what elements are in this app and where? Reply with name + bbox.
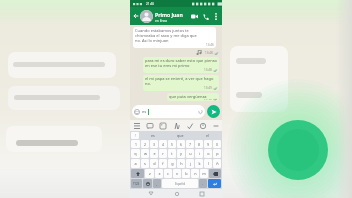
button[interactable]: Symbols <box>131 179 142 188</box>
button[interactable]: 4 <box>159 140 167 148</box>
button[interactable]: Back <box>146 189 155 198</box>
button[interactable]: Images <box>158 121 167 130</box>
staticText: 13:48 <box>204 68 212 72</box>
button[interactable]: 3 <box>150 140 158 148</box>
button[interactable]: s <box>141 159 149 168</box>
button[interactable]: k <box>195 159 203 168</box>
button[interactable]: 2 <box>141 140 149 148</box>
staticText: el <box>206 133 209 138</box>
button[interactable]: p <box>213 149 221 158</box>
button[interactable]: b <box>182 169 190 178</box>
button[interactable]: a <box>131 159 140 168</box>
button[interactable]: Enter <box>208 179 221 188</box>
button[interactable]: r <box>159 149 167 158</box>
button[interactable]: 8 <box>195 140 203 148</box>
staticText: j <box>190 161 191 166</box>
button[interactable] <box>140 10 153 23</box>
button[interactable]: Recents <box>197 189 206 198</box>
staticText: v <box>176 171 178 176</box>
button[interactable]: 1 <box>131 140 140 148</box>
button[interactable]: ñ <box>213 159 221 168</box>
button[interactable]: Backspace <box>209 169 221 178</box>
button[interactable]: para mi es duro saber esto que pienso en… <box>143 57 219 73</box>
button[interactable]: y <box>177 149 185 158</box>
button[interactable]: Stickers <box>145 121 154 130</box>
staticText: l <box>208 161 209 166</box>
staticText: 6 <box>180 142 182 147</box>
button[interactable]: 0 <box>213 140 221 148</box>
button[interactable]: h <box>177 159 185 168</box>
button[interactable]: z <box>145 169 154 178</box>
button[interactable]: Emoji <box>143 179 152 188</box>
staticText: 13:48 <box>205 51 213 55</box>
button[interactable]: w <box>141 149 149 158</box>
button[interactable]: c <box>164 169 172 178</box>
staticText: i <box>199 151 200 156</box>
staticText: que puta vergüenza <box>169 94 207 99</box>
staticText: b <box>185 171 188 176</box>
button[interactable]: 5 <box>168 140 176 148</box>
staticText: m <box>202 171 206 176</box>
staticText: 4 <box>162 142 164 147</box>
button[interactable]: el mi papa se enteró, a ver que hago no. <box>143 75 219 91</box>
button[interactable]: o <box>204 149 212 158</box>
button[interactable]: More options <box>211 12 220 21</box>
button[interactable]: Home <box>172 189 181 198</box>
button[interactable]: Video call <box>189 11 200 22</box>
staticText: x <box>158 171 161 176</box>
button[interactable]: Effects <box>185 121 194 130</box>
button[interactable]: 6 <box>177 140 185 148</box>
staticText: 13:46 <box>206 43 214 47</box>
button[interactable]: 7 <box>186 140 194 148</box>
button[interactable]: Shift <box>131 169 144 178</box>
button[interactable]: Space <box>162 179 198 188</box>
staticText: r <box>162 151 164 156</box>
staticText: n <box>194 171 197 176</box>
staticText: e <box>153 151 156 156</box>
button[interactable]: Cuando estabamos juntos te chismeaba el … <box>133 27 216 48</box>
staticText: a <box>134 161 137 166</box>
button[interactable]: Keyboard <box>132 121 141 130</box>
staticText: t <box>171 151 173 156</box>
button[interactable]: j <box>186 159 194 168</box>
button[interactable]: ! <box>131 132 139 139</box>
button[interactable]: g <box>168 159 176 168</box>
button[interactable]: 9 <box>204 140 212 148</box>
staticText: ?123 <box>133 182 140 186</box>
button[interactable]: q <box>131 149 140 158</box>
button[interactable]: que <box>167 132 194 139</box>
button[interactable]: 13:48 <box>195 50 219 55</box>
button[interactable]: x <box>155 169 163 178</box>
button[interactable]: t <box>168 149 176 158</box>
button[interactable]: n <box>191 169 199 178</box>
button[interactable]: u <box>186 149 194 158</box>
button[interactable]: v <box>173 169 181 178</box>
button[interactable]: Send <box>207 105 220 118</box>
button[interactable]: e <box>150 149 158 158</box>
staticText: ñ <box>216 161 219 166</box>
button[interactable]: m <box>200 169 208 178</box>
button[interactable]: Recent <box>198 121 207 130</box>
button[interactable]: el <box>194 132 221 139</box>
button[interactable]: f <box>159 159 167 168</box>
staticText: 3 <box>153 142 155 147</box>
button[interactable]: Voice call <box>200 11 211 22</box>
button[interactable]: que puta vergüenza <box>167 93 219 101</box>
button[interactable]: More <box>211 121 220 130</box>
staticText: 5 <box>171 142 173 147</box>
button[interactable]: es <box>132 105 205 118</box>
staticText: es <box>151 133 155 138</box>
button[interactable]: Back <box>132 12 140 20</box>
button[interactable]: l <box>204 159 212 168</box>
button[interactable]: i <box>195 149 203 158</box>
button[interactable]: es <box>139 132 167 139</box>
button[interactable]: Text <box>172 121 181 130</box>
button[interactable]: Primo Juan <box>155 11 189 22</box>
button[interactable]: Comma <box>153 179 161 188</box>
staticText: u <box>189 151 192 156</box>
staticText: 13:49 <box>204 86 212 90</box>
button[interactable]: d <box>150 159 158 168</box>
staticText: . <box>202 181 204 186</box>
staticText: 9 <box>207 142 209 147</box>
button[interactable]: Period <box>199 179 207 188</box>
